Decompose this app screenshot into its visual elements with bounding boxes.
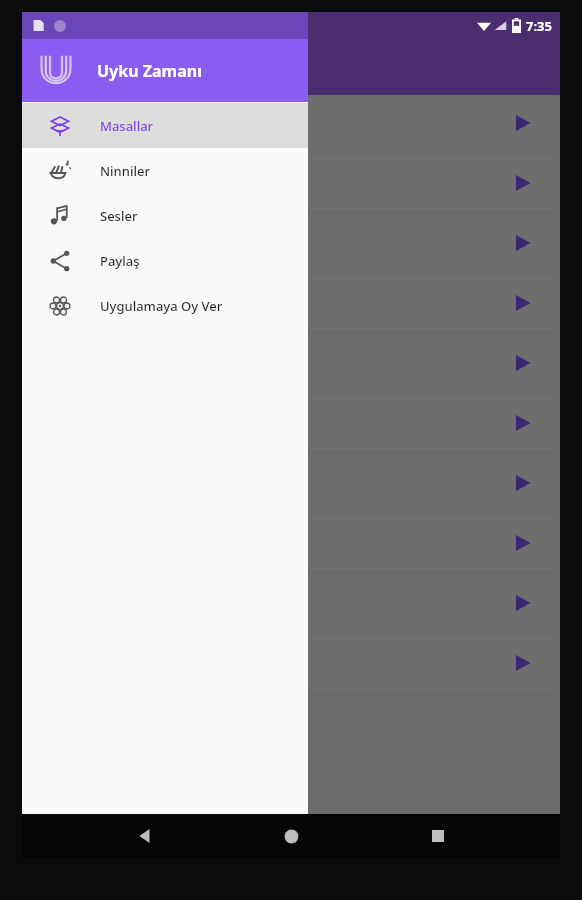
button[interactable]: [30, 95, 552, 151]
button[interactable]: [30, 335, 552, 391]
button[interactable]: Uygulamaya Oy Ver: [22, 283, 308, 328]
staticText: 7:35: [526, 17, 552, 35]
button[interactable]: Sesler: [22, 193, 308, 238]
button[interactable]: [30, 575, 552, 631]
staticText: Sesler: [100, 207, 138, 225]
staticText: Masallar: [100, 117, 154, 135]
button[interactable]: [30, 275, 552, 331]
staticText: Paylaş: [100, 252, 140, 270]
staticText: Ninniler: [100, 162, 150, 180]
button[interactable]: Ninniler: [22, 148, 308, 193]
button[interactable]: Home: [267, 814, 315, 858]
button[interactable]: [30, 155, 552, 211]
staticText: Uyku Zamanı: [97, 60, 202, 82]
button[interactable]: [30, 635, 552, 691]
button[interactable]: [30, 215, 552, 271]
button[interactable]: [30, 455, 552, 511]
button[interactable]: Masallar: [22, 103, 308, 148]
button[interactable]: Back: [121, 814, 169, 858]
button[interactable]: [30, 515, 552, 571]
button[interactable]: Recents: [414, 814, 462, 858]
button[interactable]: Paylaş: [22, 238, 308, 283]
button[interactable]: [30, 395, 552, 451]
staticText: Uygulamaya Oy Ver: [100, 297, 223, 315]
